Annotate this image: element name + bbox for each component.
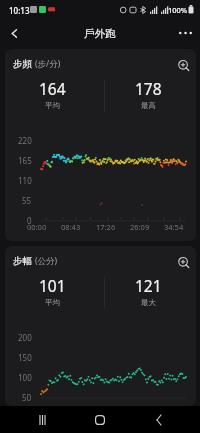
staticText: 34:54: [164, 222, 184, 232]
staticText: 164: [39, 78, 66, 99]
staticText: 步頻: [13, 58, 32, 70]
staticText: 最大: [141, 298, 156, 307]
staticText: 165: [18, 155, 32, 166]
staticText: 步幅: [13, 255, 32, 267]
staticText: 110: [18, 175, 32, 186]
button[interactable]: Recent apps: [25, 406, 59, 433]
staticText: 220: [18, 135, 32, 146]
button[interactable]: 步幅: [5, 246, 196, 406]
button[interactable]: Back: [142, 406, 176, 433]
button[interactable]: Zoom in: [175, 57, 193, 75]
staticText: 121: [135, 275, 162, 296]
staticText: 200: [18, 332, 32, 343]
staticText: (公分): [35, 255, 58, 267]
staticText: (步/分): [35, 58, 61, 70]
staticText: 最高: [141, 101, 156, 110]
staticText: 0: [27, 215, 32, 226]
staticText: 00:00: [27, 222, 47, 232]
button[interactable]: Home: [83, 406, 117, 433]
button[interactable]: Zoom in: [175, 254, 193, 272]
button[interactable]: 步頻: [5, 49, 196, 241]
staticText: 50: [22, 392, 32, 403]
staticText: 100: [18, 372, 32, 383]
button[interactable]: More options: [173, 21, 197, 45]
staticText: 100%: [168, 5, 188, 15]
staticText: 101: [39, 275, 66, 296]
staticText: 08:43: [61, 222, 81, 232]
staticText: 26:09: [130, 222, 150, 232]
button[interactable]: Back: [2, 21, 26, 45]
staticText: 平均: [45, 101, 60, 110]
staticText: 150: [18, 352, 32, 363]
staticText: 178: [135, 78, 162, 99]
staticText: 戶外跑: [84, 27, 116, 40]
staticText: 平均: [45, 298, 60, 307]
staticText: 55: [22, 195, 32, 206]
staticText: 10:13: [9, 5, 30, 16]
staticText: 17:26: [96, 222, 116, 232]
